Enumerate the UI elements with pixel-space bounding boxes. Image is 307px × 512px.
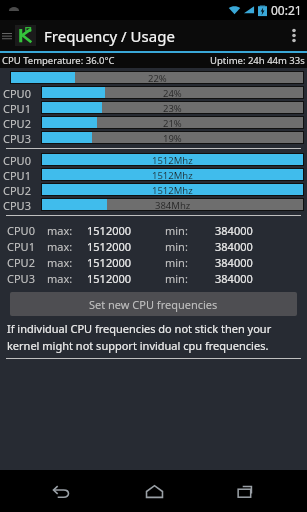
staticText: 19% [163,132,182,143]
staticText: CPU2 [3,183,31,196]
staticText: CPU3 [3,131,31,144]
staticText: 1512000 [87,223,132,238]
button[interactable]: Recent apps [215,470,277,512]
staticText: 384Mhz [155,199,191,210]
staticText: 22% [148,72,167,83]
staticText: 1512Mhz [152,169,193,180]
staticText: CPU3 [3,198,31,211]
staticText: max: [47,271,73,286]
button[interactable]: Set new CPU frequencies [10,292,297,316]
staticText: CPU1 [3,168,31,181]
staticText: Frequency / Usage [44,26,175,46]
staticText: max: [47,239,73,254]
staticText: CPU1 [3,101,31,114]
staticText: 384000 [215,271,253,286]
button[interactable]: Back [30,470,92,512]
staticText: kernel might not support invidual cpu fr… [7,338,269,353]
staticText: min: [165,255,188,270]
staticText: 21% [163,117,182,128]
staticText: 1512Mhz [152,184,193,195]
staticText: CPU Temperature: 36.0°C [2,54,115,67]
staticText: CPU3 [7,271,35,286]
staticText: CPU2 [3,116,31,129]
staticText: 1512000 [87,255,132,270]
staticText: min: [165,223,188,238]
button[interactable]: More options [281,20,307,51]
staticText: min: [165,239,188,254]
button[interactable]: Home [123,470,185,512]
staticText: Set new CPU frequencies [89,297,218,312]
staticText: CPU0 [3,153,31,166]
staticText: CPU0 [3,86,31,99]
staticText: CPU1 [7,239,35,254]
staticText: If individual CPU frequencies do not sti… [7,321,272,336]
staticText: CPU0 [7,223,35,238]
staticText: Uptime: 24h 44m 33s [210,54,305,67]
staticText: max: [47,255,73,270]
staticText: 384000 [215,223,253,238]
staticText: max: [47,223,73,238]
staticText: 384000 [215,239,253,254]
staticText: CPU2 [7,255,35,270]
staticText: 00:21 [271,2,302,18]
staticText: 1512000 [87,239,132,254]
staticText: 23% [163,102,182,113]
staticText: 384000 [215,255,253,270]
staticText: 24% [163,87,182,98]
staticText: min: [165,271,188,286]
staticText: 1512000 [87,271,132,286]
staticText: 1512Mhz [152,154,193,165]
